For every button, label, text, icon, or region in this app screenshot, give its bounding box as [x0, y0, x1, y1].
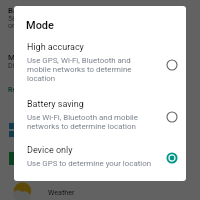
staticText: Device only	[27, 145, 73, 156]
staticText: Use GPS to determine your location	[27, 159, 161, 168]
staticText: Battery saving	[27, 99, 84, 110]
other: Not selected	[164, 57, 180, 73]
staticText: Weather	[48, 188, 75, 196]
other: Selected	[164, 150, 180, 166]
button[interactable]: Weather	[0, 183, 200, 200]
button[interactable]: Device only	[14, 145, 186, 169]
button[interactable]: High accuracy	[14, 42, 186, 85]
staticText: High accuracy	[27, 42, 84, 53]
staticText: Mode	[26, 19, 54, 32]
staticText: on charge	[8, 22, 39, 30]
staticText: Battery	[8, 6, 34, 15]
button[interactable]: Battery saving	[14, 99, 186, 132]
staticText: Use GPS, Wi-Fi, Bluetooth and mobile net…	[27, 56, 151, 83]
staticText: Memory	[8, 53, 38, 62]
staticText: Reset	[8, 86, 26, 94]
staticText: Display	[8, 62, 31, 70]
staticText: 58% - 6 hr 20 min left	[8, 15, 74, 23]
other: Not selected	[164, 109, 180, 125]
staticText: Use Wi-Fi, Bluetooth and mobile networks…	[27, 113, 161, 131]
